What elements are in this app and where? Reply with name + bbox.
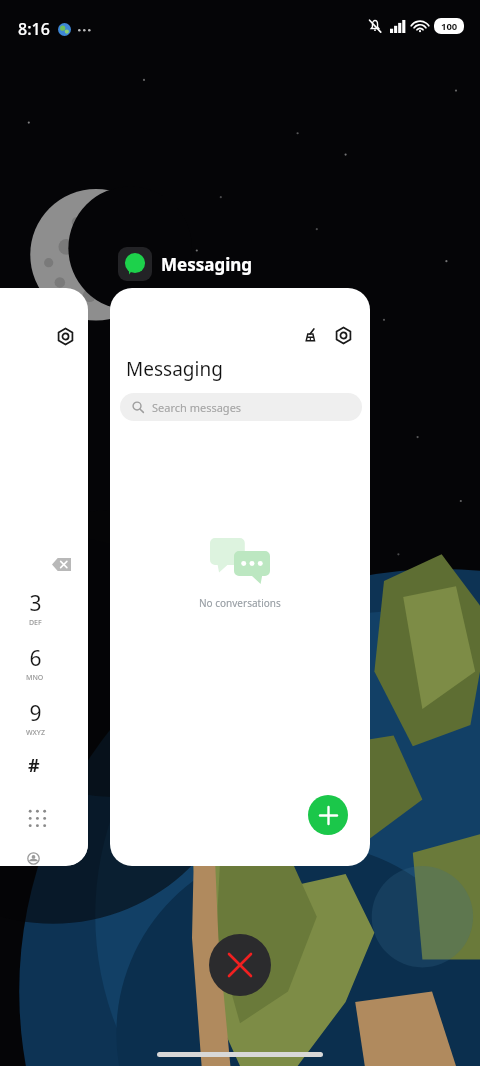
staticText: 9 <box>29 699 42 728</box>
button[interactable]: New conversation <box>308 795 348 835</box>
staticText: DEF <box>29 618 42 628</box>
button[interactable]: Search messages <box>120 393 362 421</box>
button[interactable]: Keypad <box>19 800 55 836</box>
button[interactable]: Settings <box>53 324 77 348</box>
button[interactable]: Settings <box>0 288 88 866</box>
button[interactable]: Backspace <box>50 556 72 572</box>
staticText: # <box>28 753 40 778</box>
staticText: 3 <box>29 589 42 618</box>
button[interactable]: Clean up <box>110 288 370 866</box>
button[interactable]: 3 <box>11 589 59 628</box>
button[interactable]: 9 <box>11 699 59 738</box>
button[interactable]: 6 <box>11 644 59 683</box>
button[interactable]: Clear all <box>209 934 271 996</box>
button[interactable] <box>118 247 152 281</box>
staticText: Search messages <box>152 400 242 415</box>
staticText: 8:16 <box>18 18 50 40</box>
staticText: MNO <box>26 673 44 683</box>
button[interactable]: Settings <box>330 322 356 348</box>
button[interactable]: Clean up <box>298 322 324 348</box>
staticText: Messaging <box>161 253 253 276</box>
staticText: No conversations <box>199 596 281 610</box>
button[interactable]: Contacts <box>19 852 48 865</box>
button[interactable]: # <box>15 752 53 778</box>
staticText: 6 <box>29 644 42 673</box>
staticText: WXYZ <box>26 728 45 738</box>
staticText: 100 <box>441 20 458 33</box>
staticText: Messaging <box>126 356 223 382</box>
